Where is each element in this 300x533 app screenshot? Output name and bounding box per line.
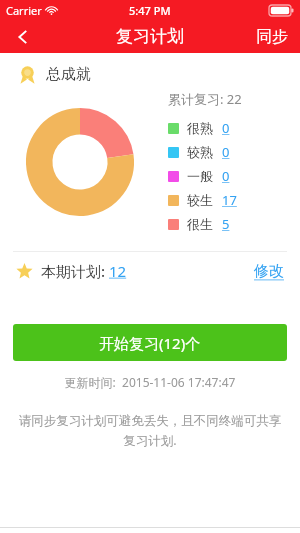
button[interactable]: 同步 (244, 20, 300, 53)
button[interactable]: 开始复习(12)个 (13, 324, 287, 361)
staticText: 修改 (254, 262, 284, 281)
staticText: 总成就 (46, 65, 91, 84)
staticText: 0 (222, 167, 230, 185)
button[interactable]: 很熟 (168, 116, 230, 140)
staticText: 0 (222, 143, 230, 161)
staticText: Carrier (6, 3, 42, 18)
staticText: 本期计划: (41, 261, 109, 281)
staticText: 更新时间: 2015-11-06 17:47:47 (0, 374, 300, 390)
staticText: 同步 (256, 27, 288, 47)
button[interactable]: 修改 (254, 262, 284, 281)
button[interactable]: Back (0, 20, 46, 53)
staticText: 较熟 (187, 144, 213, 160)
staticText: 17 (222, 191, 237, 209)
button[interactable]: 一般 (168, 164, 230, 188)
staticText: 5 (222, 215, 230, 233)
staticText: 很熟 (187, 120, 213, 136)
button[interactable]: 较熟 (168, 140, 230, 164)
staticText: 开始复习(12)个 (99, 333, 201, 353)
staticText: 请同步复习计划可避免丢失，且不同终端可共享复习计划. (18, 413, 282, 449)
staticText: 0 (222, 119, 230, 137)
staticText: 5:47 PM (129, 3, 171, 18)
button[interactable]: 较生 (168, 188, 237, 212)
staticText: 复习计划 (116, 26, 184, 47)
button[interactable]: 很生 (168, 212, 230, 236)
button[interactable]: 本期计划: (41, 261, 127, 281)
staticText: 很生 (187, 216, 213, 232)
staticText: 较生 (187, 192, 213, 208)
staticText: 累计复习: 22 (168, 90, 242, 108)
staticText: 一般 (187, 168, 213, 184)
staticText: 12 (109, 261, 127, 281)
